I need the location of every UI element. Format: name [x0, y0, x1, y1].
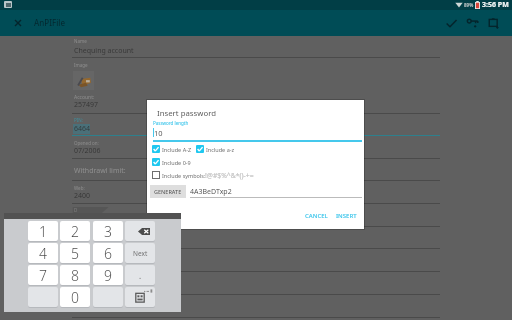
staticText: 5 [71, 244, 79, 263]
staticText: 6464 [74, 124, 91, 134]
staticText: 3 [104, 222, 112, 241]
staticText: GENERATE [154, 188, 182, 195]
staticText: Account: [74, 94, 95, 101]
staticText: 89% [464, 2, 474, 8]
staticText: 9 [104, 266, 112, 285]
button[interactable]: Include A-Z [152, 145, 192, 153]
staticText: 0 [71, 288, 79, 307]
staticText: . [139, 270, 142, 281]
staticText: 257497 [74, 100, 99, 110]
staticText: Include 0-9 [162, 159, 191, 166]
button[interactable]: Close [6, 11, 29, 34]
button[interactable]: 5 [60, 243, 90, 263]
button[interactable]: Add password [462, 12, 484, 34]
button[interactable]: CANCEL [303, 210, 330, 222]
button[interactable]: Add note [484, 12, 506, 34]
staticText: PIN: [74, 117, 83, 123]
staticText: 3:56 PM [482, 0, 509, 10]
staticText: Web: [74, 185, 85, 191]
staticText: Include symbols: [162, 172, 206, 179]
staticText: Withdrawl limit: [74, 166, 126, 176]
staticText: 4 [39, 244, 47, 263]
staticText: Password length [153, 120, 189, 126]
button[interactable]: 3 [93, 221, 123, 241]
button[interactable]: 4 [28, 243, 58, 263]
staticText: Insert password [157, 108, 216, 119]
button[interactable]: DEL [125, 221, 155, 241]
button[interactable]: Include a-z [196, 145, 235, 153]
staticText: AnPIFile [34, 17, 66, 28]
staticText: Include a-z [206, 146, 235, 153]
staticText: CANCEL [305, 212, 328, 220]
button[interactable]: 8 [60, 265, 90, 285]
button[interactable]: 7 [28, 265, 58, 285]
staticText: 10 [154, 128, 163, 138]
staticText: Next [133, 249, 148, 258]
staticText: 7 [39, 266, 47, 285]
button[interactable]: Include 0-9 [152, 158, 191, 166]
button[interactable]: 6 [93, 243, 123, 263]
staticText: Image [74, 62, 88, 68]
staticText: Chequing account [74, 46, 134, 56]
staticText: 6 [104, 244, 112, 263]
button[interactable]: 9 [93, 265, 123, 285]
staticText: Include A-Z [162, 146, 192, 153]
button[interactable]: Next [125, 243, 155, 263]
button[interactable]: 0 [60, 287, 90, 307]
button[interactable]: Save [440, 12, 462, 34]
staticText: 1 [39, 222, 47, 241]
button[interactable]: GENERATE [150, 185, 186, 198]
staticText: 4A3BeDTxp2 [190, 187, 232, 197]
staticText: Name [74, 38, 87, 44]
button[interactable]: Include symbols: [152, 171, 206, 179]
staticText: 07/2006 [74, 146, 101, 156]
button[interactable]: 1 [28, 221, 58, 241]
button[interactable]: 2 [60, 221, 90, 241]
staticText: 8 [71, 266, 79, 285]
staticText: INSERT [336, 212, 357, 220]
staticText: 2400 [74, 191, 91, 201]
staticText: Opened on: [74, 140, 99, 146]
staticText: D [74, 207, 78, 213]
button[interactable]: INSERT [334, 210, 359, 222]
staticText: 2 [71, 222, 79, 241]
button[interactable]: KB [125, 287, 155, 307]
button[interactable]: . [125, 265, 155, 285]
staticText: !@#$%^&*()-+= [205, 171, 254, 180]
